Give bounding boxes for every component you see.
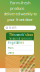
staticText: Dairy bbox=[8, 51, 14, 54]
button[interactable]: Vegetables bbox=[6, 40, 34, 45]
staticText: This week's box bbox=[9, 33, 32, 37]
staticText: Fruit bbox=[8, 46, 14, 49]
staticText: your front door bbox=[7, 17, 33, 22]
button[interactable]: Featured recipe bbox=[5, 56, 19, 72]
staticText: Search bbox=[9, 26, 17, 29]
staticText: delivered weekly to bbox=[3, 11, 36, 16]
button[interactable]: Dairy bbox=[6, 50, 34, 55]
button[interactable]: Seasonal vegetables bbox=[20, 56, 34, 72]
staticText: Seasonal greens bbox=[9, 37, 31, 40]
staticText: Vegetables bbox=[8, 41, 24, 44]
button[interactable]: Search bbox=[4, 26, 36, 30]
button[interactable]: This week's box bbox=[6, 32, 34, 40]
staticText: Farm-fresh produce bbox=[10, 0, 30, 11]
button[interactable]: Fruit bbox=[6, 45, 34, 50]
